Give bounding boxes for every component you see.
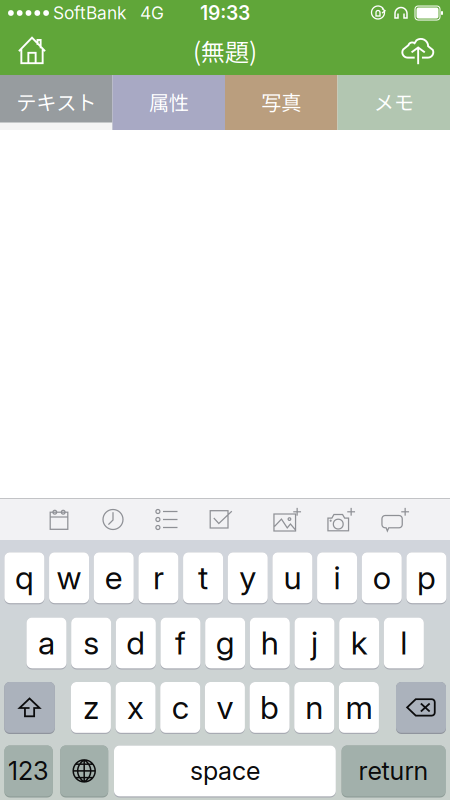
staticText: l xyxy=(400,623,407,662)
staticText: space xyxy=(190,756,260,786)
button[interactable]: g xyxy=(205,617,245,669)
button[interactable]: Take photo xyxy=(325,499,358,539)
button[interactable]: p xyxy=(406,552,446,604)
staticText: return xyxy=(359,756,429,786)
button[interactable]: r xyxy=(138,552,178,604)
staticText: o xyxy=(373,558,391,597)
button[interactable]: j xyxy=(294,617,334,669)
button[interactable]: m xyxy=(339,682,379,734)
button[interactable]: d xyxy=(116,617,156,669)
button[interactable]: Next keyboard xyxy=(60,745,108,797)
staticText: m xyxy=(345,688,372,727)
staticText: w xyxy=(57,558,82,597)
button[interactable]: z xyxy=(71,682,111,734)
button[interactable]: e xyxy=(94,552,134,604)
button[interactable]: w xyxy=(49,552,89,604)
staticText: a xyxy=(38,623,55,662)
staticText: 4G xyxy=(140,2,164,23)
staticText: r xyxy=(153,558,164,597)
button[interactable]: a xyxy=(26,617,66,669)
staticText: c xyxy=(172,688,189,727)
staticText: f xyxy=(175,623,186,662)
button[interactable]: Insert date xyxy=(45,499,73,539)
staticText: 属性 xyxy=(149,87,189,116)
button[interactable]: Insert time xyxy=(99,499,127,539)
button[interactable]: t xyxy=(183,552,223,604)
button[interactable]: Insert checkbox xyxy=(207,499,235,539)
staticText: SoftBank xyxy=(53,2,127,23)
button[interactable]: i xyxy=(317,552,357,604)
button[interactable]: y xyxy=(228,552,268,604)
button[interactable]: Upload xyxy=(386,26,450,75)
staticText: t xyxy=(198,558,208,597)
staticText: s xyxy=(83,623,99,662)
button[interactable]: Delete xyxy=(396,682,446,734)
button[interactable]: s xyxy=(71,617,111,669)
staticText: 19:33 xyxy=(200,1,250,25)
button[interactable]: 属性 xyxy=(112,75,225,130)
staticText: h xyxy=(261,623,279,662)
button[interactable]: Add photo xyxy=(271,499,304,539)
staticText: e xyxy=(105,558,123,597)
staticText: i xyxy=(334,558,341,597)
staticText: g xyxy=(216,623,235,662)
staticText: テキスト xyxy=(16,87,96,116)
staticText: k xyxy=(351,623,368,662)
button[interactable]: l xyxy=(384,617,424,669)
button[interactable]: 写真 xyxy=(225,75,337,130)
staticText: b xyxy=(260,688,279,727)
staticText: p xyxy=(417,558,436,597)
staticText: (無題) xyxy=(193,33,257,68)
staticText: メモ xyxy=(374,87,414,116)
button[interactable]: x xyxy=(116,682,156,734)
button[interactable]: v xyxy=(205,682,245,734)
staticText: u xyxy=(283,558,301,597)
button[interactable]: c xyxy=(160,682,200,734)
staticText: j xyxy=(311,623,318,662)
staticText: q xyxy=(15,558,34,597)
button[interactable]: f xyxy=(160,617,200,669)
staticText: z xyxy=(83,688,99,727)
button[interactable]: テキスト xyxy=(0,75,112,130)
button[interactable]: n xyxy=(294,682,334,734)
button[interactable]: Add comment xyxy=(379,499,412,539)
button[interactable]: Insert list xyxy=(153,499,181,539)
button[interactable]: Home xyxy=(0,26,64,75)
button[interactable]: o xyxy=(362,552,402,604)
staticText: y xyxy=(239,558,256,597)
button[interactable]: h xyxy=(250,617,290,669)
button[interactable]: メモ xyxy=(337,75,450,130)
staticText: 写真 xyxy=(261,87,301,116)
button[interactable]: k xyxy=(339,617,379,669)
button[interactable]: space xyxy=(114,745,336,797)
button[interactable]: u xyxy=(272,552,312,604)
button[interactable]: b xyxy=(250,682,290,734)
staticText: x xyxy=(127,688,144,727)
button[interactable]: Shift xyxy=(4,682,55,734)
staticText: 123 xyxy=(8,756,49,786)
staticText: d xyxy=(126,623,145,662)
button[interactable]: q xyxy=(4,552,44,604)
staticText: n xyxy=(305,688,323,727)
button[interactable]: return xyxy=(342,745,446,797)
button[interactable]: 123 xyxy=(4,745,53,797)
staticText: v xyxy=(216,688,233,727)
